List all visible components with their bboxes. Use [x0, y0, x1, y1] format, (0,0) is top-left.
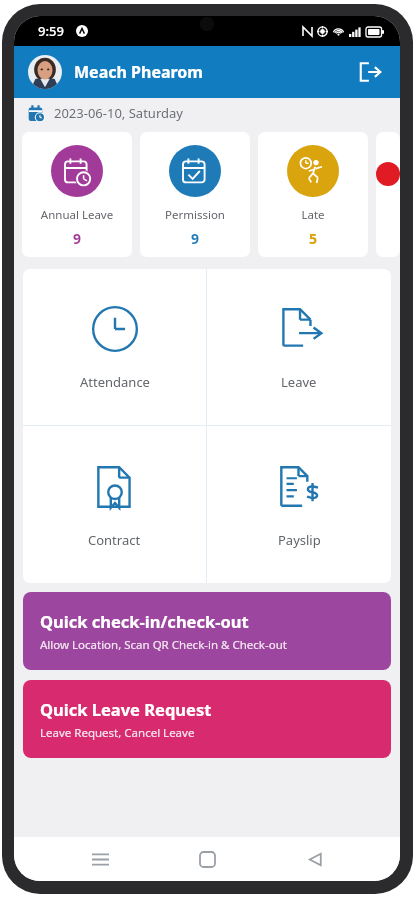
staticText: Late [258, 207, 368, 223]
button[interactable]: Attendance [23, 269, 206, 425]
staticText: Quick check-in/check-out [40, 610, 249, 632]
button[interactable]: Logout [350, 52, 390, 92]
staticText: Annual Leave [22, 207, 132, 223]
button[interactable]: Contract [23, 426, 206, 583]
staticText: Permission [140, 207, 250, 223]
staticText: 9 [22, 229, 132, 248]
button[interactable] [376, 132, 400, 257]
staticText: 2023-06-10, Saturday [54, 104, 183, 122]
button[interactable]: Late [258, 132, 368, 257]
button[interactable]: Back [293, 837, 337, 881]
staticText: Allow Location, Scan QR Check-in & Check… [40, 637, 287, 653]
button[interactable]: Recent apps [78, 837, 122, 881]
staticText: Leave Request, Cancel Leave [40, 725, 195, 741]
button[interactable]: Permission [140, 132, 250, 257]
staticText: Meach Phearom [74, 61, 203, 83]
button[interactable]: Leave [207, 269, 391, 425]
button[interactable]: Annual Leave [22, 132, 132, 257]
button[interactable]: Home [185, 837, 229, 881]
staticText: Quick Leave Request [40, 698, 212, 720]
staticText: Attendance [80, 373, 150, 391]
staticText: Payslip [278, 531, 321, 549]
staticText: Contract [88, 531, 141, 549]
staticText: 5 [258, 229, 368, 248]
staticText: 9 [140, 229, 250, 248]
button[interactable]: Profile photo [28, 55, 62, 89]
staticText: Leave [281, 373, 317, 391]
button[interactable]: Quick check-in/check-out [23, 592, 391, 670]
button[interactable]: Quick Leave Request [23, 680, 391, 758]
button[interactable]: Payslip [207, 426, 391, 583]
staticText: 9:59 [38, 22, 64, 40]
